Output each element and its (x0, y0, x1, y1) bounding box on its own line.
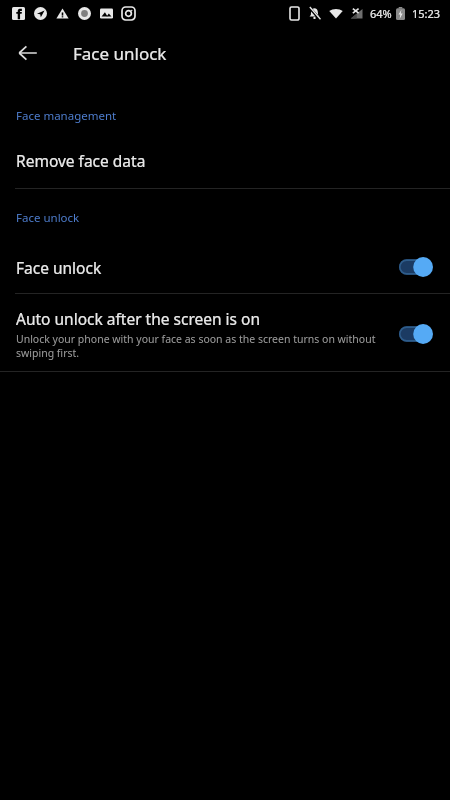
button[interactable]: Back (10, 35, 46, 71)
staticText: Unlock your phone with your face as soon… (16, 332, 389, 360)
staticText: 15:23 (412, 6, 441, 21)
button[interactable]: Toggle (399, 323, 433, 345)
staticText: Face unlock (73, 42, 167, 65)
staticText: 64% (370, 6, 392, 21)
staticText: Auto unlock after the screen is on (16, 308, 260, 329)
staticText: Face management (16, 108, 117, 124)
button[interactable]: Remove face data (0, 150, 450, 171)
staticText: Face unlock (16, 210, 80, 226)
staticText: Face unlock (16, 257, 102, 278)
button[interactable]: Auto unlock after the screen is on (0, 308, 450, 360)
staticText: Remove face data (16, 150, 146, 171)
button[interactable]: Face unlock (0, 256, 450, 278)
button[interactable]: Toggle (399, 256, 433, 278)
